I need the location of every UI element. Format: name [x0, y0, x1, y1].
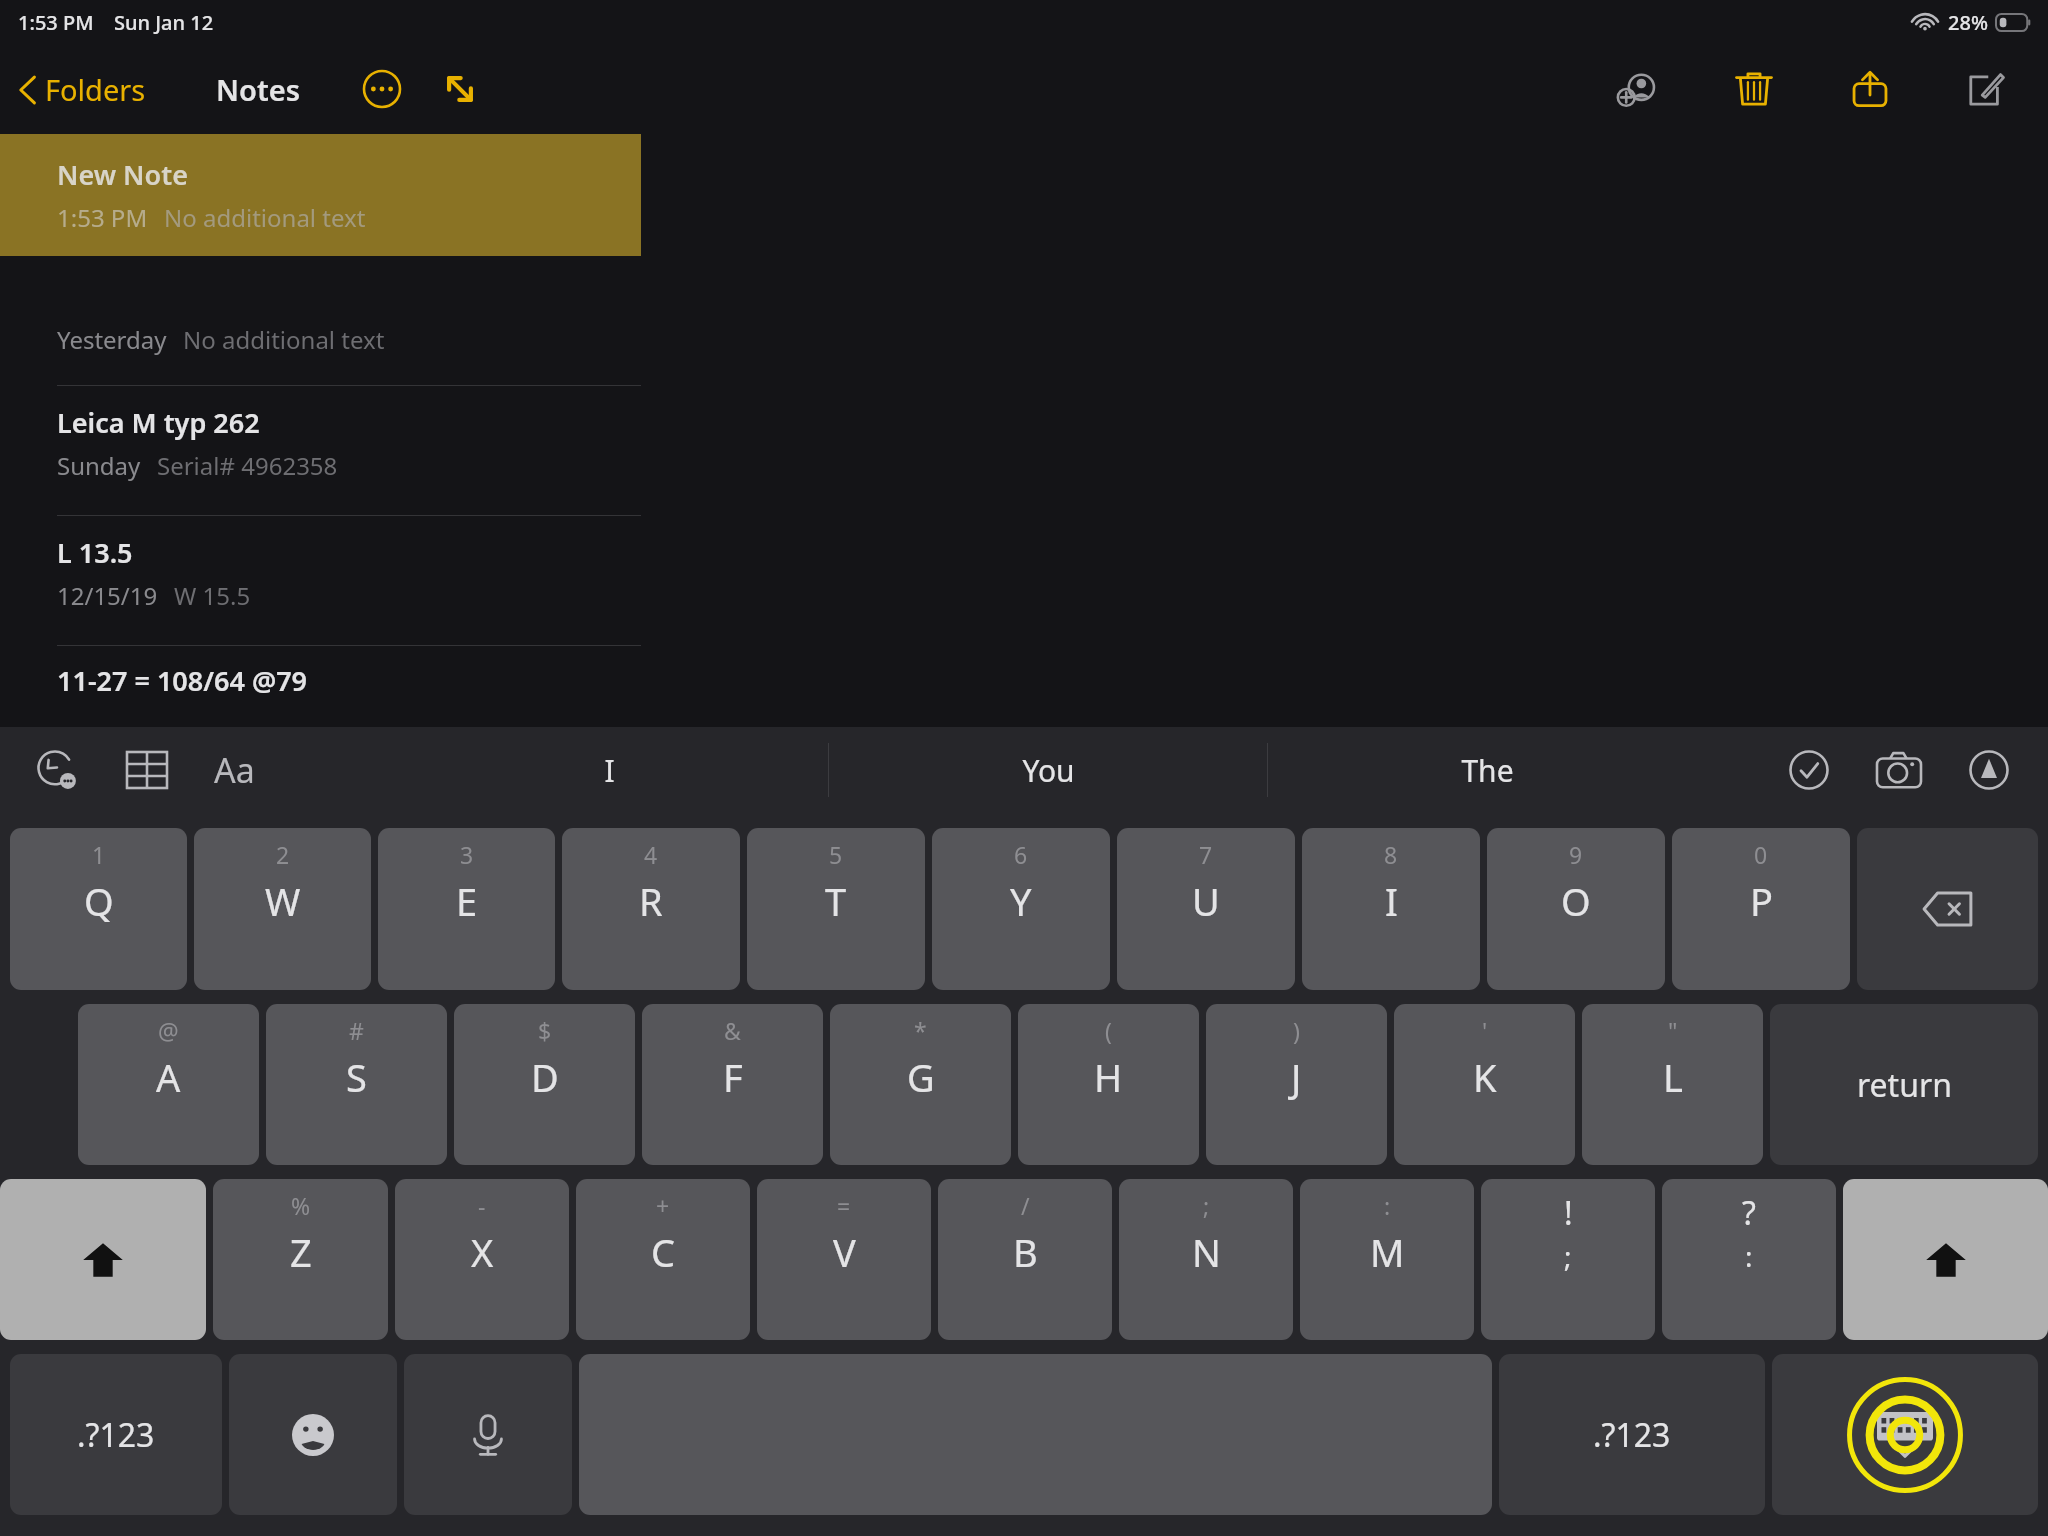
staticText: A — [156, 1051, 181, 1103]
button[interactable]: 4 — [562, 828, 740, 990]
button[interactable]: Leica M typ 262 — [0, 386, 641, 516]
button[interactable]: Backspace — [1857, 828, 2038, 990]
staticText: ' — [1482, 1015, 1488, 1046]
button[interactable]: Shift — [1843, 1179, 2048, 1340]
staticText: Sun Jan 12 — [114, 9, 214, 36]
button[interactable]: # — [266, 1004, 447, 1165]
staticText: P — [1750, 875, 1773, 927]
button[interactable]: Share — [1834, 53, 1906, 125]
staticText: = — [837, 1190, 851, 1221]
button[interactable]: Camera — [1866, 737, 1932, 803]
staticText: 6 — [1014, 839, 1028, 870]
button[interactable]: - — [395, 1179, 569, 1340]
staticText: F — [723, 1051, 743, 1103]
staticText: " — [1668, 1015, 1678, 1046]
staticText: L — [1663, 1051, 1683, 1103]
button[interactable]: return — [1770, 1004, 2038, 1165]
button[interactable]: 6 — [932, 828, 1110, 990]
button[interactable]: 9 — [1487, 828, 1665, 990]
button[interactable]: $ — [454, 1004, 635, 1165]
staticText: 1:53 PM — [57, 201, 148, 234]
staticText: & — [724, 1015, 741, 1046]
button[interactable]: & — [642, 1004, 823, 1165]
button[interactable]: 1 — [10, 828, 187, 990]
staticText: V — [833, 1226, 856, 1278]
staticText: .?123 — [77, 1413, 155, 1457]
staticText: Aa — [214, 747, 255, 793]
button[interactable]: Yesterday — [0, 256, 641, 386]
button[interactable]: = — [757, 1179, 931, 1340]
button[interactable]: 5 — [747, 828, 925, 990]
button[interactable]: Undo — [24, 737, 90, 803]
staticText: ; — [1564, 1237, 1572, 1275]
staticText: 0 — [1754, 839, 1768, 870]
staticText: S — [346, 1051, 367, 1103]
staticText: * — [914, 1015, 927, 1046]
staticText: E — [456, 875, 478, 927]
staticText: No additional text — [164, 201, 366, 234]
button[interactable]: 7 — [1117, 828, 1295, 990]
staticText: The — [1461, 750, 1514, 791]
button[interactable]: ) — [1206, 1004, 1387, 1165]
button[interactable]: New Note — [0, 134, 641, 256]
button[interactable]: : — [1300, 1179, 1474, 1340]
staticText: ( — [1105, 1015, 1112, 1046]
button[interactable]: More options — [358, 65, 406, 113]
button[interactable]: * — [830, 1004, 1011, 1165]
button[interactable]: .?123 — [10, 1354, 222, 1515]
staticText: 2 — [276, 839, 290, 870]
staticText: Yesterday — [57, 323, 167, 356]
button[interactable]: You — [829, 727, 1267, 813]
button[interactable]: 3 — [378, 828, 555, 990]
button[interactable]: Expand — [430, 59, 490, 119]
staticText: / — [1021, 1190, 1030, 1221]
staticText: % — [291, 1190, 311, 1221]
button[interactable]: Hide keyboard — [1772, 1354, 2038, 1515]
staticText: 12/15/19 — [57, 579, 158, 612]
button[interactable]: Dictate — [404, 1354, 572, 1515]
button[interactable]: / — [938, 1179, 1112, 1340]
button[interactable]: Checklist — [1776, 737, 1842, 803]
staticText: Sunday — [57, 449, 141, 482]
staticText: 9 — [1569, 839, 1583, 870]
button[interactable]: .?123 — [1499, 1354, 1765, 1515]
button[interactable]: The — [1268, 727, 1706, 813]
button[interactable]: ( — [1018, 1004, 1199, 1165]
button[interactable]: + — [576, 1179, 750, 1340]
button[interactable]: 8 — [1302, 828, 1480, 990]
staticText: - — [478, 1190, 486, 1221]
button[interactable]: Aa — [200, 739, 269, 801]
staticText: Z — [290, 1226, 312, 1278]
staticText: 5 — [829, 839, 843, 870]
button[interactable]: Folders — [0, 62, 156, 117]
staticText: 1:53 PM — [18, 9, 94, 36]
button[interactable]: Compose — [1950, 53, 2022, 125]
button[interactable]: 2 — [194, 828, 371, 990]
staticText: Q — [84, 875, 114, 927]
staticText: W 15.5 — [174, 579, 251, 612]
button[interactable]: I — [391, 727, 828, 813]
button[interactable]: Add people — [1602, 53, 1674, 125]
button[interactable]: " — [1582, 1004, 1763, 1165]
staticText: O — [1561, 875, 1591, 927]
staticText: Serial# 4962358 — [157, 449, 338, 482]
button[interactable]: L 13.5 — [0, 516, 641, 646]
button[interactable]: ' — [1394, 1004, 1575, 1165]
button[interactable]: Markup — [1956, 737, 2022, 803]
button[interactable]: ? — [1662, 1179, 1836, 1340]
button[interactable]: 0 — [1672, 828, 1850, 990]
staticText: No additional text — [183, 323, 385, 356]
staticText: C — [651, 1226, 676, 1278]
staticText: $ — [538, 1015, 552, 1046]
button[interactable]: Shift — [0, 1179, 206, 1340]
button[interactable]: Table — [114, 737, 180, 803]
button[interactable]: Emoji — [229, 1354, 397, 1515]
button[interactable]: @ — [78, 1004, 259, 1165]
staticText: 4 — [644, 839, 658, 870]
button[interactable]: % — [213, 1179, 388, 1340]
button[interactable]: ; — [1119, 1179, 1293, 1340]
button[interactable]: 11-27 = 108/64 @79 — [0, 646, 641, 706]
button[interactable]: ! — [1481, 1179, 1655, 1340]
button[interactable]: Delete — [1718, 53, 1790, 125]
